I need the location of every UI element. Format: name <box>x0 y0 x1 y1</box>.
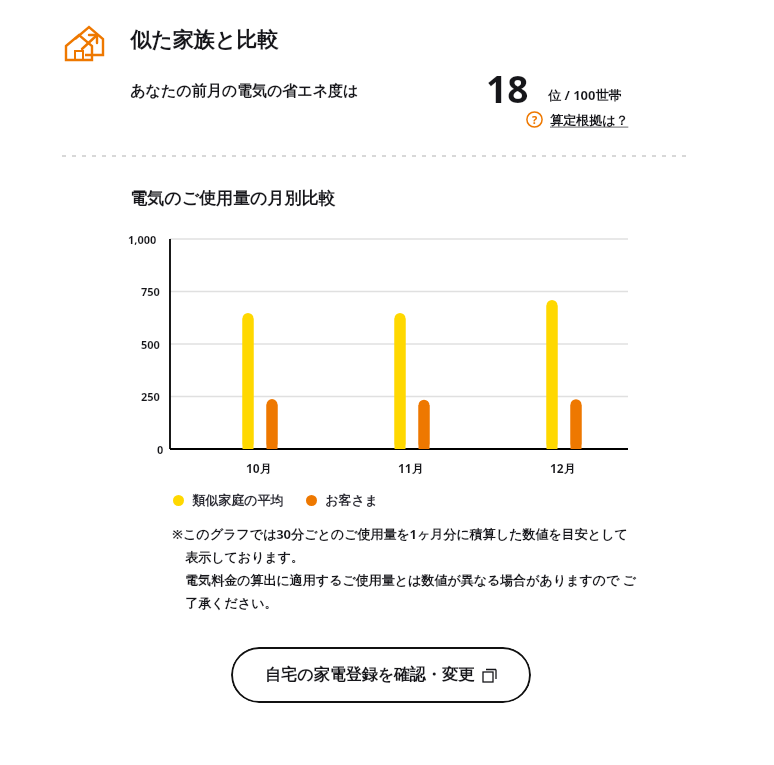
staticText: 12月 <box>550 460 576 476</box>
staticText: 表示しております。 <box>172 548 304 566</box>
staticText: 了承ください。 <box>172 594 278 612</box>
staticText: 算定根拠は？ <box>550 112 629 128</box>
staticText: 10月 <box>246 460 272 476</box>
staticText: 750 <box>141 284 160 299</box>
staticText: 1,000 <box>128 232 157 247</box>
staticText: あなたの前月の電気の省エネ度は <box>130 82 359 101</box>
staticText: 位 / 100世帯 <box>548 86 622 104</box>
staticText: 似た家族と比較 <box>130 27 278 53</box>
other: 似た家族と比較 <box>63 20 107 64</box>
button[interactable]: ? <box>524 110 631 129</box>
button[interactable]: 自宅の家電登録を確認・変更 <box>231 647 531 703</box>
staticText: 250 <box>141 389 160 404</box>
staticText: お客さま <box>325 492 378 508</box>
staticText: ※このグラフでは30分ごとのご使用量を1ヶ月分に積算した数値を目安として <box>172 525 628 543</box>
staticText: 自宅の家電登録を確認・変更 <box>265 665 474 685</box>
staticText: 類似家庭の平均 <box>192 492 284 508</box>
staticText: 0 <box>157 442 164 457</box>
staticText: ? <box>532 112 538 127</box>
staticText: 電気のご使用量の月別比較 <box>130 188 336 209</box>
staticText: 11月 <box>398 460 424 476</box>
staticText: 電気料金の算出に適用するご使用量とは数値が異なる場合がありますので ご <box>172 571 636 589</box>
staticText: 18 <box>486 63 529 113</box>
staticText: 500 <box>141 337 160 352</box>
